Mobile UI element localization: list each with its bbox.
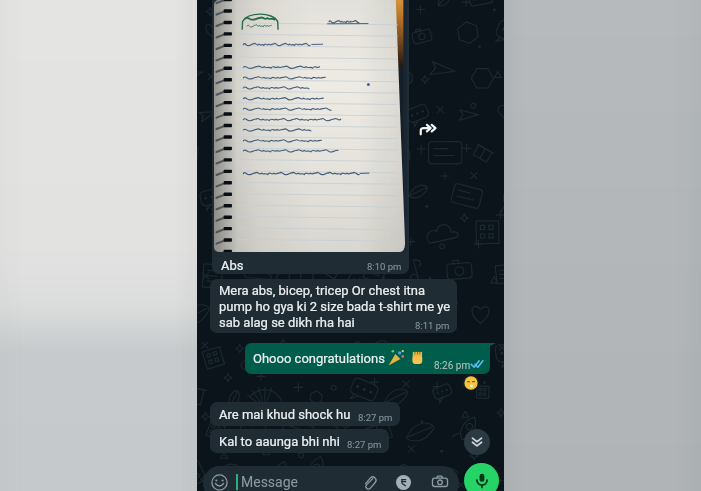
staticText: Are mai khud shock hu (219, 407, 351, 422)
staticText: Abs (221, 258, 244, 273)
staticText: 8:27 pm (347, 439, 382, 450)
staticText: 8:26 pm (434, 360, 471, 372)
button[interactable]: Are mai khud shock hu (210, 402, 400, 426)
button[interactable]: Ohooo congratulations (245, 343, 496, 374)
button[interactable]: Voice message (464, 463, 499, 491)
staticText: Kal to aaunga bhi nhi (219, 434, 340, 449)
button[interactable]: Attach (362, 475, 377, 490)
button[interactable]: Mera abs, bicep, tricep Or chest itna pu… (210, 279, 457, 333)
button[interactable]: Message (203, 466, 459, 491)
button[interactable]: Camera (432, 474, 448, 490)
button[interactable]: Kal to aaunga bhi nhi (210, 429, 389, 453)
staticText: Ohooo congratulations (253, 351, 385, 366)
button[interactable]: Forward (419, 118, 441, 140)
button[interactable]: Reaction (462, 374, 479, 391)
button[interactable]: Abs (212, 0, 409, 274)
staticText: 8:10 pm (367, 261, 402, 272)
staticText: Message (241, 474, 298, 490)
button[interactable]: Payment (396, 475, 411, 490)
button[interactable]: Scroll to bottom (464, 429, 490, 455)
staticText: 8:11 pm (415, 320, 450, 331)
staticText: 8:27 pm (358, 412, 393, 423)
staticText: Mera abs, bicep, tricep Or chest itna pu… (219, 283, 451, 330)
